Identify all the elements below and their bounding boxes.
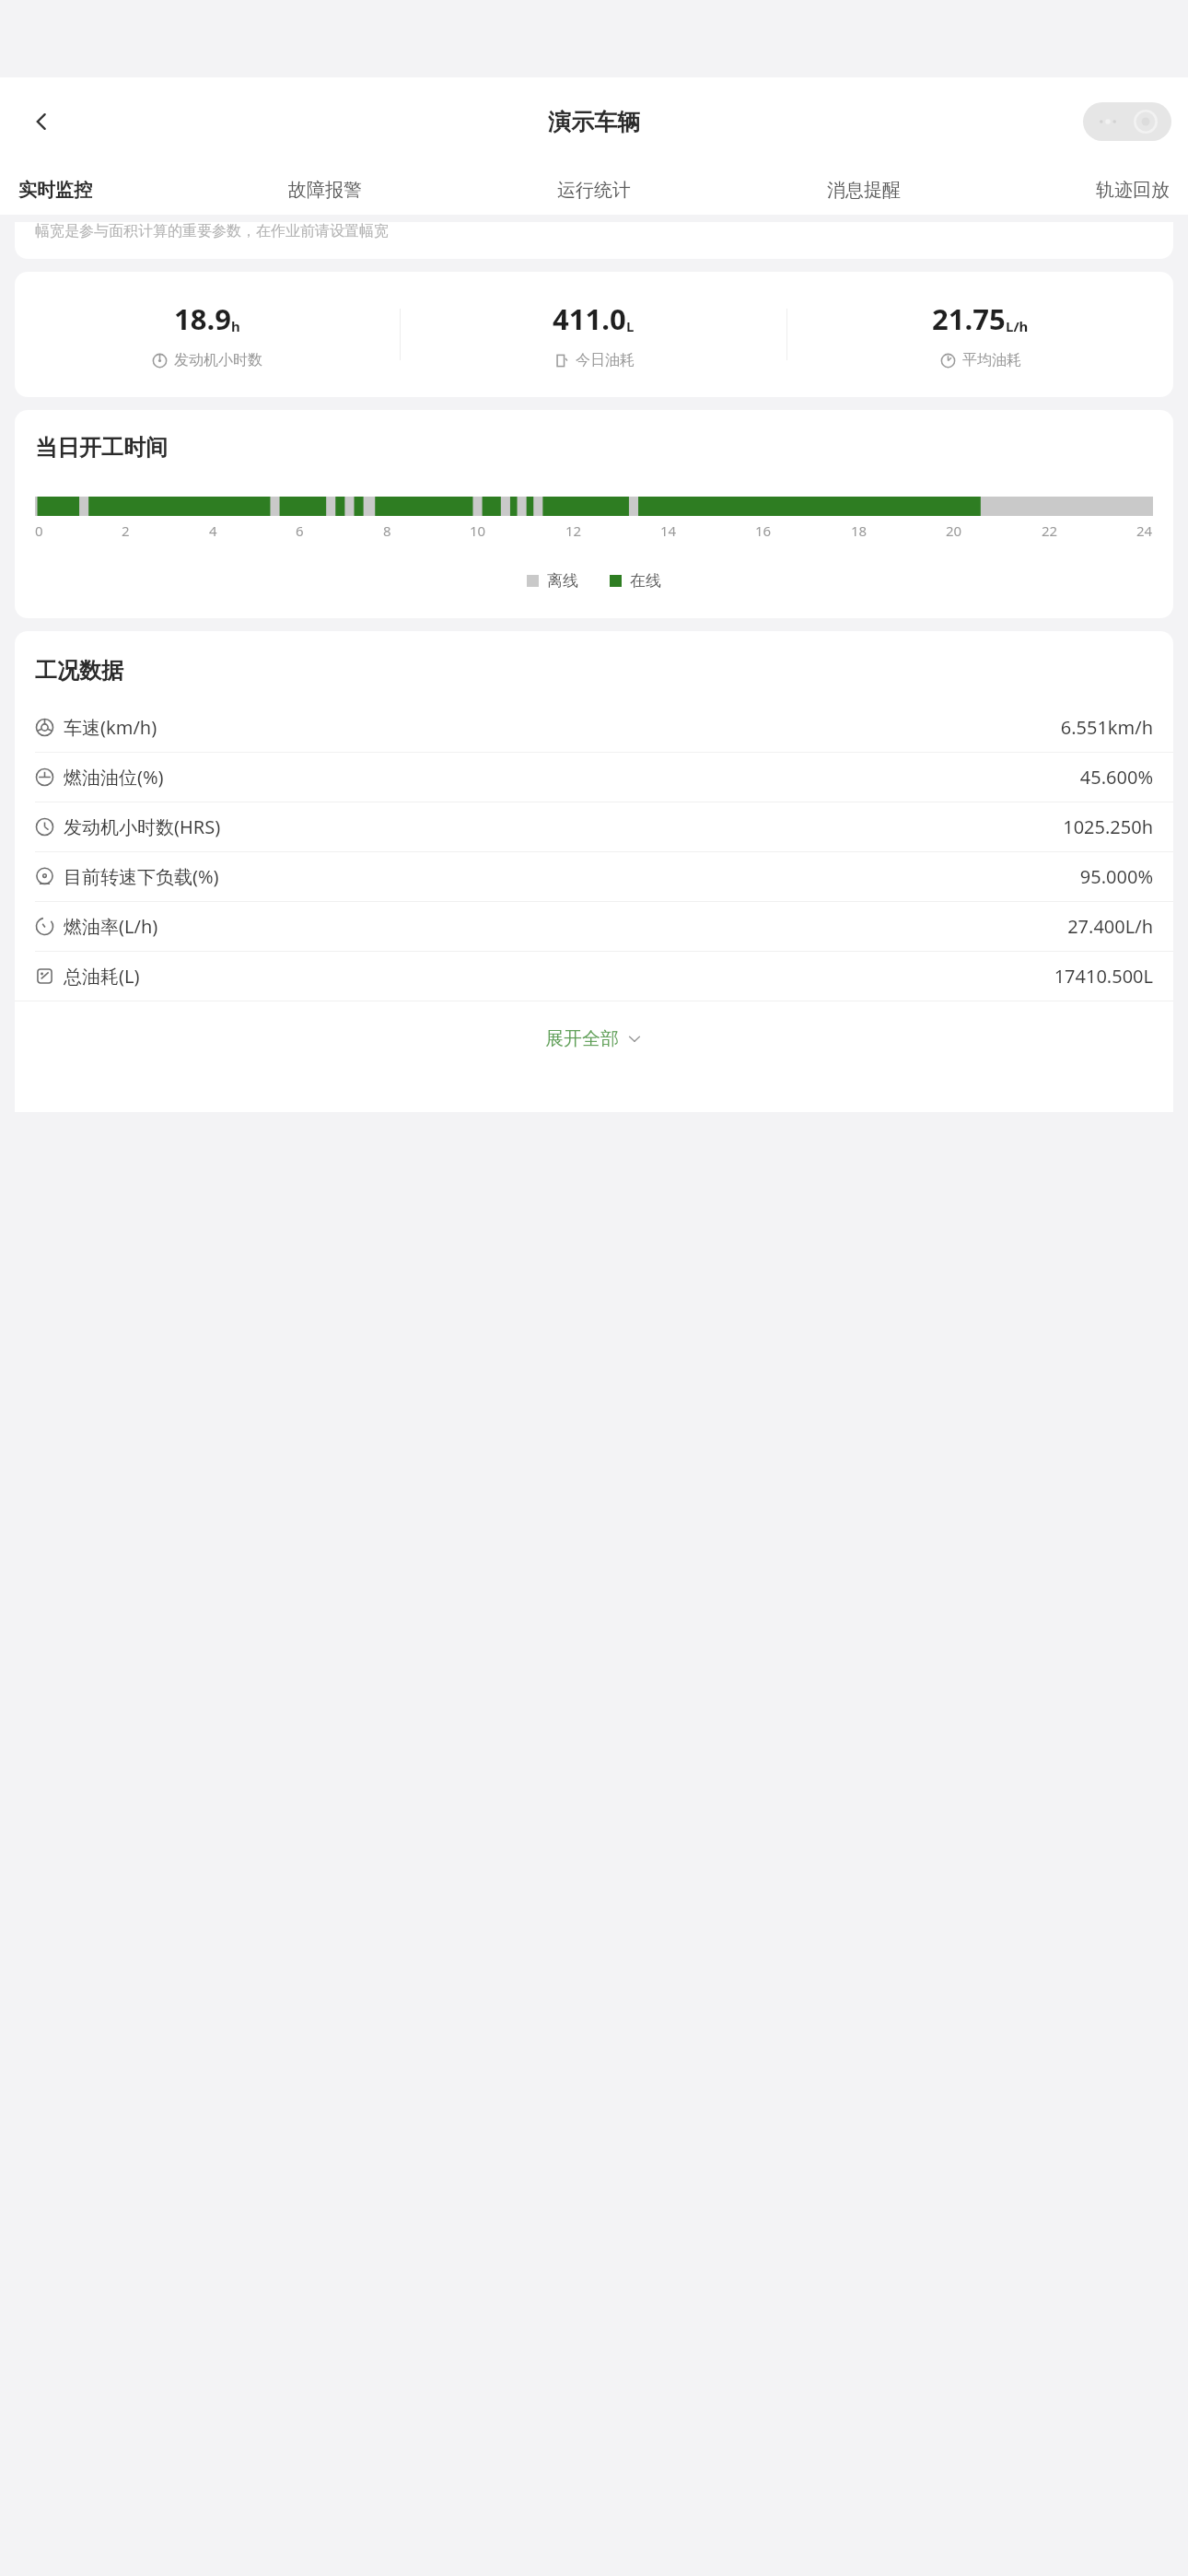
button[interactable]: 18.9 <box>15 299 400 369</box>
staticText: 展开全部 <box>545 1027 619 1050</box>
staticText: 6 <box>296 521 304 540</box>
staticText: 幅宽是参与面积计算的重要参数，在作业前请设置幅宽 <box>35 222 389 240</box>
staticText: 24 <box>1136 521 1153 540</box>
staticText: 20 <box>946 521 962 540</box>
staticText: 14 <box>660 521 677 540</box>
staticText: 45.600% <box>1079 765 1153 790</box>
button[interactable]: 实时监控 <box>18 179 92 202</box>
button[interactable]: 燃油率(L/h) <box>15 902 1173 951</box>
staticText: 发动机小时数(HRS) <box>64 814 221 839</box>
staticText: 离线 <box>547 571 578 591</box>
staticText: 演示车辆 <box>548 108 640 136</box>
staticText: 发动机小时数 <box>174 351 262 369</box>
staticText: 轨迹回放 <box>1096 179 1170 202</box>
staticText: 4 <box>209 521 217 540</box>
staticText: 燃油油位(%) <box>64 765 164 790</box>
staticText: 总油耗(L) <box>64 964 140 989</box>
button[interactable]: 轨迹回放 <box>1096 179 1170 202</box>
staticText: 18 <box>851 521 868 540</box>
button[interactable]: 发动机小时数(HRS) <box>15 802 1173 851</box>
staticText: 6.551km/h <box>1060 715 1153 740</box>
staticText: 目前转速下负载(%) <box>64 864 219 889</box>
staticText: 22 <box>1042 521 1058 540</box>
staticText: 当日开工时间 <box>35 434 168 462</box>
staticText: 实时监控 <box>18 179 92 202</box>
button[interactable]: 411.0 <box>401 299 786 369</box>
button[interactable]: 车速(km/h) <box>15 703 1173 752</box>
button[interactable]: 展开全部 <box>15 1001 1173 1075</box>
staticText: 17410.500L <box>1054 964 1153 989</box>
button[interactable]: 总油耗(L) <box>15 952 1173 1001</box>
button[interactable]: 故障报警 <box>288 179 362 202</box>
staticText: 今日油耗 <box>576 351 635 369</box>
staticText: 燃油率(L/h) <box>64 914 158 939</box>
staticText: 21.75 <box>932 299 1006 338</box>
staticText: 18.9 <box>174 299 231 338</box>
staticText: 车速(km/h) <box>64 715 157 740</box>
button[interactable]: 目前转速下负载(%) <box>15 852 1173 901</box>
staticText: 平均油耗 <box>962 351 1021 369</box>
button[interactable]: 21.75 <box>787 299 1173 369</box>
button[interactable]: 燃油油位(%) <box>15 753 1173 802</box>
staticText: 8 <box>383 521 391 540</box>
staticText: L/h <box>1006 317 1029 335</box>
button[interactable]: 运行统计 <box>557 179 631 202</box>
button[interactable]: 消息提醒 <box>827 179 901 202</box>
staticText: h <box>231 317 240 335</box>
staticText: 故障报警 <box>288 179 362 202</box>
staticText: 2 <box>122 521 130 540</box>
staticText: 12 <box>565 521 582 540</box>
staticText: 10 <box>470 521 486 540</box>
staticText: 27.400L/h <box>1067 914 1153 939</box>
staticText: L <box>626 317 635 335</box>
staticText: 95.000% <box>1079 864 1153 889</box>
staticText: 工况数据 <box>35 657 123 685</box>
staticText: 16 <box>755 521 772 540</box>
staticText: 0 <box>35 521 43 540</box>
staticText: 运行统计 <box>557 179 631 202</box>
staticText: 411.0 <box>553 299 626 338</box>
staticText: 1025.250h <box>1063 814 1153 839</box>
staticText: 在线 <box>630 571 661 591</box>
button[interactable]: Menu and close <box>1083 102 1171 141</box>
staticText: 消息提醒 <box>827 179 901 202</box>
button[interactable]: Back <box>17 97 66 146</box>
